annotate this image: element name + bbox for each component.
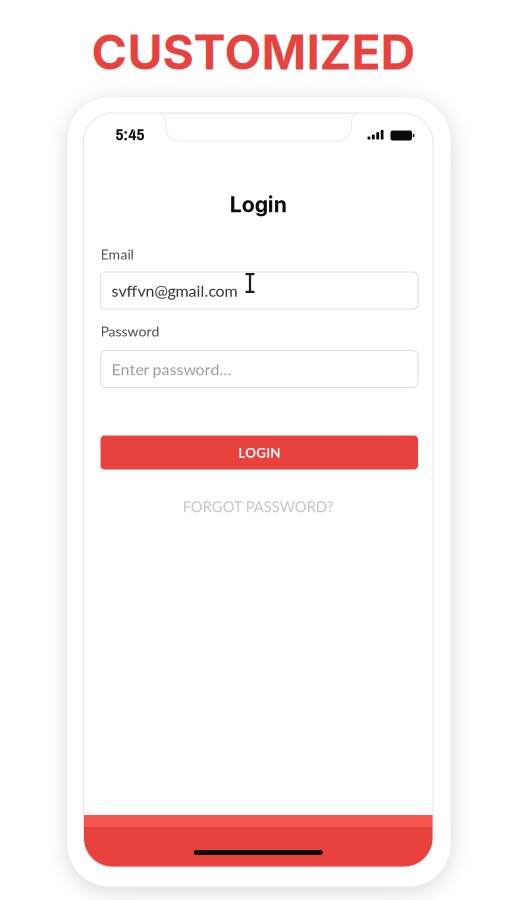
- button[interactable]: FORGOT PASSWORD?: [83, 496, 433, 516]
- staticText: svffvn@gmail.com: [111, 281, 237, 300]
- staticText: Password: [100, 323, 159, 339]
- staticText: FORGOT PASSWORD?: [183, 498, 334, 515]
- staticText: Enter password...: [111, 359, 231, 379]
- staticText: LOGIN: [238, 444, 280, 460]
- staticText: CUSTOMIZED: [91, 23, 415, 81]
- button[interactable]: LOGIN: [100, 435, 418, 469]
- staticText: Login: [230, 192, 287, 217]
- staticText: 5:45: [115, 122, 144, 146]
- staticText: Email: [100, 246, 133, 262]
